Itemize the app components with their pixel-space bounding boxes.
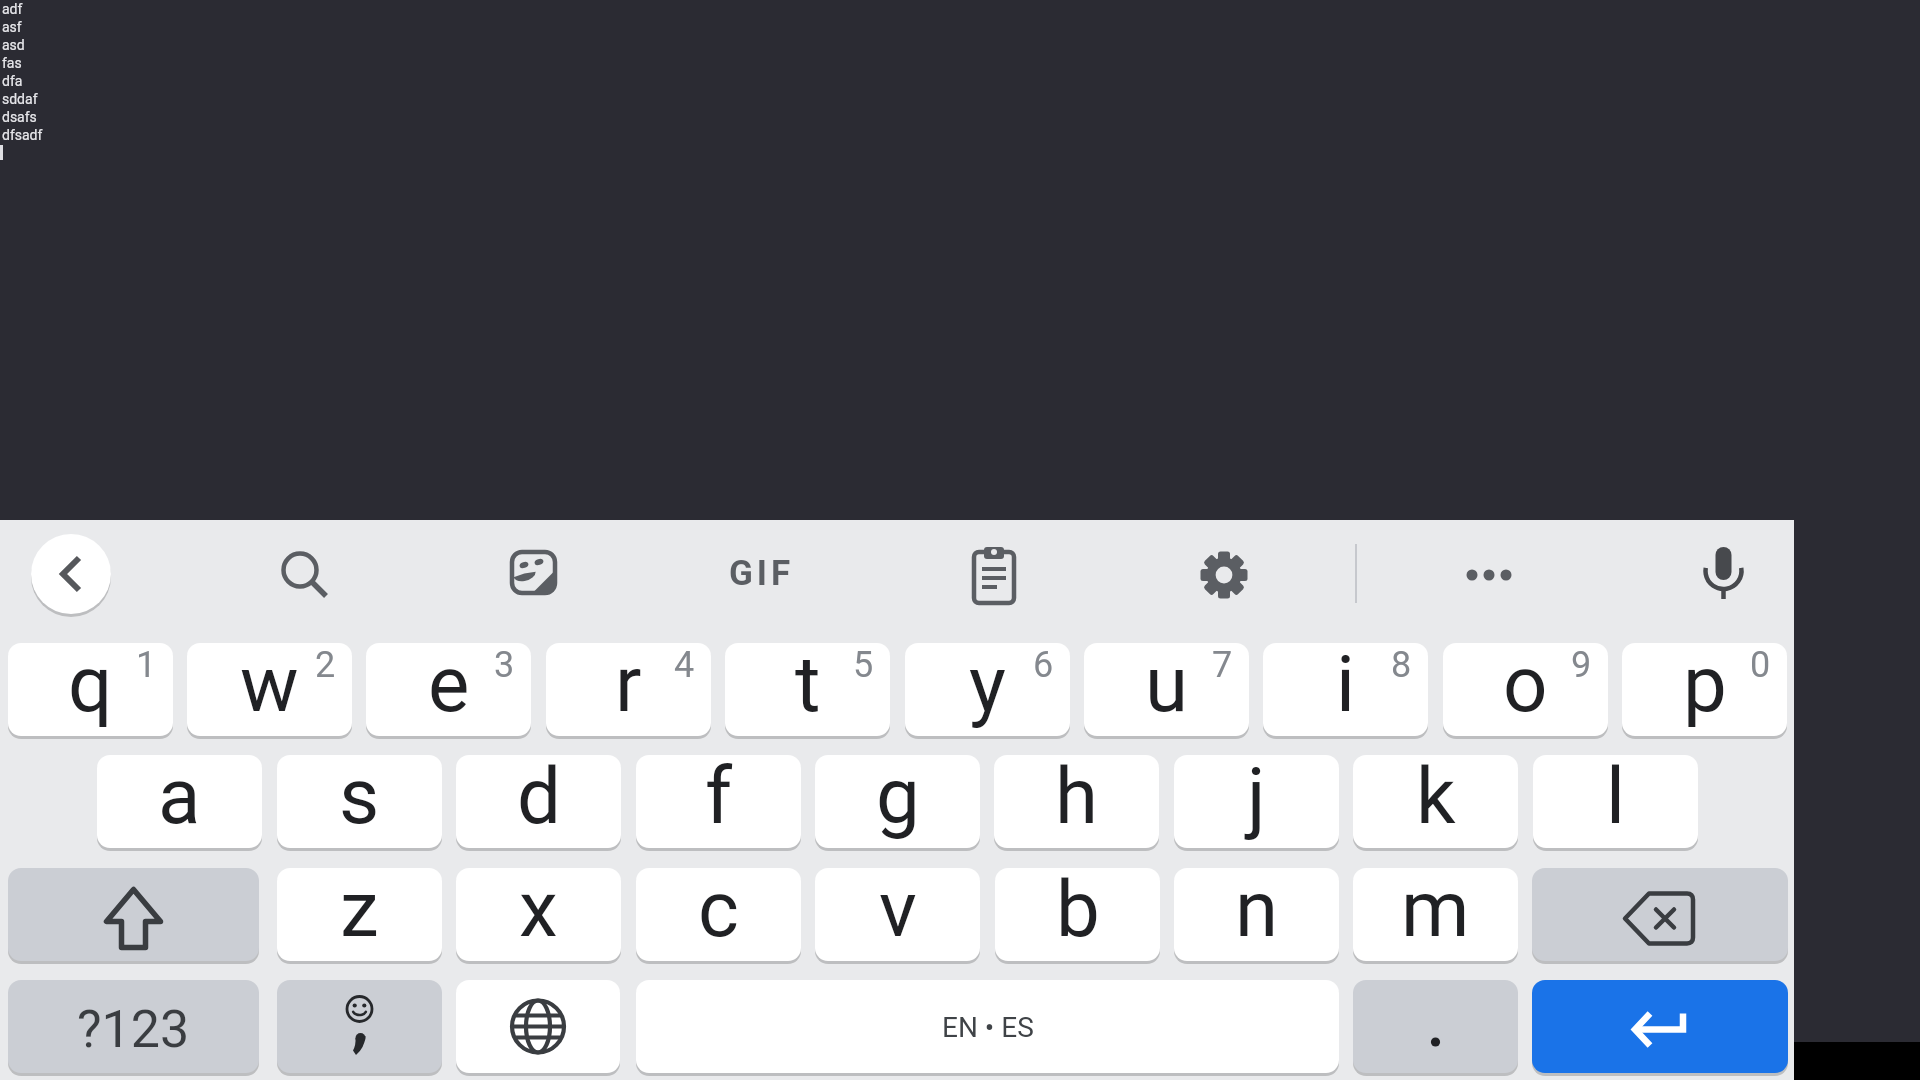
- staticText: y: [969, 639, 1006, 730]
- button[interactable]: v: [815, 868, 980, 961]
- button[interactable]: p: [1622, 643, 1787, 736]
- staticText: 2: [315, 644, 336, 686]
- button[interactable]: t: [725, 643, 890, 736]
- staticText: i: [1336, 639, 1355, 730]
- button[interactable]: [1184, 535, 1264, 615]
- staticText: a: [158, 751, 201, 842]
- button[interactable]: [262, 532, 342, 612]
- button[interactable]: [1532, 980, 1788, 1073]
- button[interactable]: c: [636, 868, 801, 961]
- button[interactable]: r: [546, 643, 711, 736]
- button[interactable]: [493, 532, 573, 614]
- staticText: l: [1606, 751, 1625, 842]
- staticText: fas: [2, 55, 22, 71]
- staticText: h: [1055, 751, 1098, 842]
- button[interactable]: e: [366, 643, 531, 736]
- button[interactable]: [1532, 868, 1788, 961]
- button[interactable]: h: [994, 755, 1159, 848]
- button[interactable]: d: [456, 755, 621, 848]
- button[interactable]: b: [995, 868, 1160, 961]
- button[interactable]: [1449, 535, 1529, 615]
- staticText: q: [68, 639, 113, 730]
- staticText: 1: [136, 644, 157, 686]
- button[interactable]: GIF: [722, 533, 802, 613]
- button[interactable]: g: [815, 755, 980, 848]
- staticText: 3: [494, 644, 515, 686]
- staticText: u: [1145, 639, 1188, 730]
- staticText: m: [1401, 864, 1470, 955]
- button[interactable]: [1353, 980, 1518, 1073]
- staticText: j: [1247, 751, 1266, 842]
- button[interactable]: [954, 535, 1034, 615]
- button[interactable]: [1683, 533, 1763, 613]
- staticText: s: [339, 751, 380, 842]
- staticText: 0: [1750, 644, 1771, 686]
- button[interactable]: a: [97, 755, 262, 848]
- button[interactable]: i: [1263, 643, 1428, 736]
- button[interactable]: y: [905, 643, 1070, 736]
- button[interactable]: EN • ES: [636, 980, 1339, 1073]
- button[interactable]: [8, 868, 259, 961]
- staticText: w: [240, 639, 299, 730]
- staticText: f: [705, 751, 733, 842]
- staticText: asf: [2, 19, 22, 35]
- staticText: 8: [1391, 644, 1412, 686]
- staticText: r: [615, 639, 642, 730]
- staticText: o: [1503, 639, 1548, 730]
- staticText: dfa: [2, 73, 23, 89]
- staticText: b: [1056, 864, 1100, 955]
- button[interactable]: f: [636, 755, 801, 848]
- staticText: sddaf: [2, 91, 38, 107]
- button[interactable]: [277, 980, 442, 1073]
- button[interactable]: [31, 534, 111, 614]
- staticText: n: [1235, 864, 1279, 955]
- staticText: 7: [1212, 644, 1233, 686]
- staticText: t: [795, 639, 821, 730]
- staticText: 5: [853, 644, 874, 686]
- button[interactable]: z: [277, 868, 442, 961]
- button[interactable]: l: [1533, 755, 1698, 848]
- staticText: 9: [1571, 644, 1592, 686]
- staticText: 6: [1033, 644, 1054, 686]
- staticText: e: [428, 639, 470, 730]
- button[interactable]: q: [8, 643, 173, 736]
- staticText: d: [517, 751, 561, 842]
- staticText: x: [519, 864, 558, 955]
- button[interactable]: o: [1443, 643, 1608, 736]
- button[interactable]: j: [1174, 755, 1339, 848]
- staticText: c: [698, 864, 739, 955]
- staticText: v: [879, 864, 917, 955]
- staticText: ?123: [77, 999, 190, 1060]
- staticText: p: [1683, 639, 1727, 730]
- staticText: dsafs: [2, 109, 37, 125]
- staticText: asd: [2, 37, 25, 53]
- button[interactable]: w: [187, 643, 352, 736]
- staticText: adf: [2, 1, 23, 17]
- button[interactable]: x: [456, 868, 621, 961]
- button[interactable]: [456, 980, 620, 1073]
- button[interactable]: m: [1353, 868, 1518, 961]
- button[interactable]: n: [1174, 868, 1339, 961]
- button[interactable]: k: [1353, 755, 1518, 848]
- staticText: g: [876, 751, 920, 842]
- staticText: dfsadf: [2, 127, 43, 143]
- button[interactable]: ?123: [8, 980, 259, 1073]
- button[interactable]: u: [1084, 643, 1249, 736]
- staticText: GIF: [729, 553, 795, 594]
- staticText: z: [340, 864, 379, 955]
- staticText: k: [1416, 751, 1456, 842]
- button[interactable]: s: [277, 755, 442, 848]
- staticText: 4: [674, 644, 695, 686]
- staticText: EN • ES: [942, 1011, 1034, 1044]
